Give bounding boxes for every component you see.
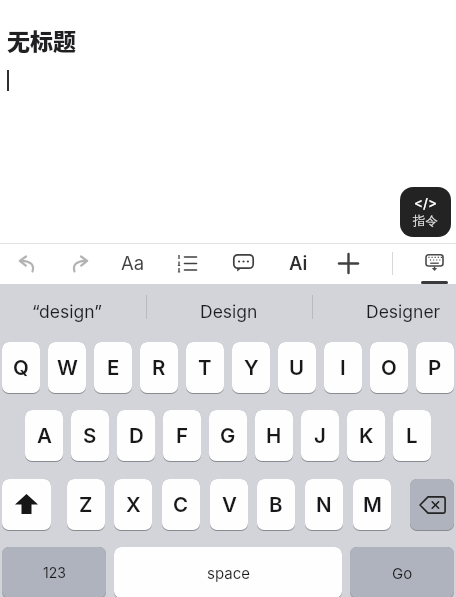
staticText: Q bbox=[13, 355, 29, 380]
button[interactable]: Design bbox=[146, 284, 312, 338]
button[interactable] bbox=[172, 250, 202, 276]
button[interactable]: I bbox=[324, 342, 362, 394]
button[interactable]: E bbox=[94, 342, 132, 394]
button[interactable]: </> bbox=[400, 187, 451, 237]
staticText: T bbox=[198, 355, 212, 380]
button[interactable] bbox=[420, 249, 448, 275]
staticText: Design bbox=[200, 301, 258, 322]
staticText: I bbox=[340, 355, 346, 380]
button[interactable]: Q bbox=[2, 342, 40, 394]
button[interactable] bbox=[10, 251, 40, 277]
button[interactable]: G bbox=[209, 410, 247, 462]
staticText: Ai bbox=[289, 252, 308, 274]
staticText: Aa bbox=[121, 252, 145, 274]
staticText: G bbox=[220, 423, 236, 448]
staticText: F bbox=[176, 423, 189, 448]
staticText: “design” bbox=[32, 301, 102, 322]
button[interactable] bbox=[228, 250, 258, 276]
button[interactable]: D bbox=[117, 410, 155, 462]
button[interactable]: H bbox=[255, 410, 293, 462]
button[interactable]: C bbox=[162, 479, 200, 531]
staticText: Y bbox=[244, 355, 259, 380]
staticText: Z bbox=[79, 492, 93, 517]
staticText: X bbox=[126, 492, 141, 517]
button[interactable]: U bbox=[278, 342, 316, 394]
button[interactable]: Z bbox=[67, 479, 105, 531]
button[interactable] bbox=[66, 251, 96, 277]
staticText: Go bbox=[392, 564, 413, 582]
button[interactable] bbox=[410, 479, 454, 531]
button[interactable]: P bbox=[416, 342, 454, 394]
staticText: W bbox=[57, 355, 78, 380]
staticText: D bbox=[129, 423, 144, 448]
staticText: H bbox=[266, 423, 282, 448]
button[interactable]: Designer bbox=[348, 284, 456, 338]
staticText: M bbox=[363, 492, 382, 517]
button[interactable]: S bbox=[71, 410, 109, 462]
button[interactable]: R bbox=[140, 342, 178, 394]
staticText: R bbox=[152, 355, 166, 380]
staticText: 无标题 bbox=[7, 23, 76, 56]
staticText: 123 bbox=[43, 564, 66, 581]
staticText: A bbox=[37, 423, 52, 448]
button[interactable]: T bbox=[186, 342, 224, 394]
button[interactable]: N bbox=[305, 479, 343, 531]
button[interactable]: B bbox=[257, 479, 295, 531]
button[interactable]: A bbox=[25, 410, 63, 462]
button[interactable]: J bbox=[301, 410, 339, 462]
staticText: J bbox=[314, 423, 326, 448]
button[interactable]: O bbox=[370, 342, 408, 394]
button[interactable] bbox=[2, 479, 51, 531]
staticText: N bbox=[316, 492, 332, 517]
button[interactable]: Go bbox=[350, 547, 454, 597]
staticText: K bbox=[359, 423, 374, 448]
staticText: L bbox=[406, 423, 418, 448]
staticText: Designer bbox=[366, 301, 441, 322]
button[interactable]: W bbox=[48, 342, 86, 394]
staticText: P bbox=[428, 355, 442, 380]
staticText: V bbox=[222, 492, 237, 517]
button[interactable]: Y bbox=[232, 342, 270, 394]
staticText: space bbox=[207, 564, 250, 582]
button[interactable]: X bbox=[114, 479, 152, 531]
button[interactable]: L bbox=[393, 410, 431, 462]
button[interactable]: V bbox=[210, 479, 248, 531]
button[interactable]: Aa bbox=[115, 248, 151, 278]
button[interactable]: M bbox=[353, 479, 391, 531]
staticText: O bbox=[381, 355, 397, 380]
staticText: E bbox=[107, 355, 120, 380]
button[interactable]: K bbox=[347, 410, 385, 462]
button[interactable]: F bbox=[163, 410, 201, 462]
staticText: </> bbox=[414, 195, 438, 211]
button[interactable]: “design” bbox=[0, 284, 134, 338]
button[interactable] bbox=[334, 249, 362, 277]
button[interactable]: space bbox=[114, 547, 342, 597]
staticText: C bbox=[173, 492, 189, 517]
button[interactable]: Ai bbox=[282, 248, 314, 278]
button[interactable]: 123 bbox=[2, 547, 106, 597]
staticText: S bbox=[83, 423, 97, 448]
staticText: B bbox=[269, 492, 283, 517]
staticText: 指令 bbox=[413, 213, 438, 229]
staticText: U bbox=[289, 355, 305, 380]
